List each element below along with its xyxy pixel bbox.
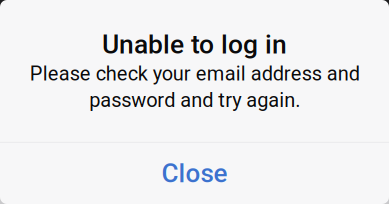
staticText: Unable to log in (102, 29, 287, 60)
staticText: Close (161, 158, 227, 189)
staticText: Please check your email address and pass… (29, 62, 359, 112)
button[interactable]: Close (0, 143, 389, 204)
